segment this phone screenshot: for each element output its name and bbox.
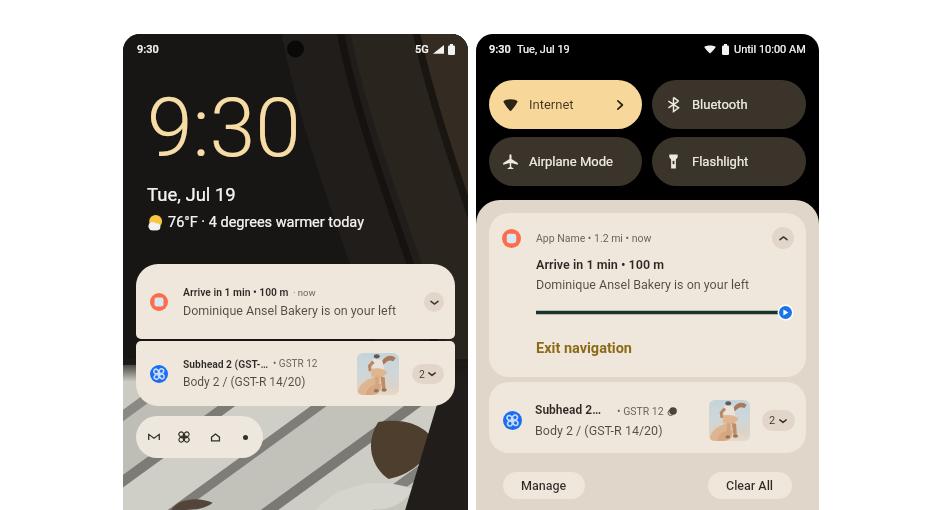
button[interactable]: Exit navigation (536, 340, 632, 357)
button[interactable]: Home (203, 425, 227, 449)
button[interactable]: Clear All (708, 472, 792, 499)
staticText: 2 (419, 368, 425, 380)
staticText: Internet (529, 97, 574, 112)
staticText: Dominique Ansel Bakery is on your left (183, 303, 397, 318)
staticText: Body 2 / (GST-R 14/20) (183, 375, 306, 389)
staticText: 9:30 (137, 43, 159, 56)
staticText: 9:30 (147, 80, 301, 176)
button[interactable]: 2 (762, 410, 795, 431)
staticText: Bluetooth (692, 97, 748, 112)
button[interactable]: Expand notification (424, 292, 444, 312)
staticText: Tue, Jul 19 (517, 43, 570, 56)
staticText: Tue, Jul 19 (147, 184, 236, 206)
button[interactable]: Airplane Mode (489, 137, 642, 186)
button[interactable]: Internet (489, 80, 642, 129)
button[interactable]: App Name • 1.2 mi • now (489, 213, 806, 377)
staticText: Manage (521, 478, 567, 493)
staticText: Until 10:00 AM (734, 43, 806, 56)
staticText: Airplane Mode (529, 154, 613, 169)
staticText: Subhead 2 (GST-… (183, 358, 269, 370)
staticText: 5G (415, 43, 429, 56)
staticText: 2 (769, 414, 776, 427)
button[interactable]: Subhead 2 (GST-… (136, 341, 455, 406)
staticText: Arrive in 1 min • 100 m (183, 286, 289, 298)
button[interactable]: 2 (412, 364, 444, 384)
staticText: • GSTR 12 (617, 405, 664, 417)
staticText: 9:30 (489, 43, 511, 56)
staticText: Dominique Ansel Bakery is on your left (536, 277, 750, 292)
button[interactable]: Gmail (142, 425, 166, 449)
staticText: 76°F · 4 degrees warmer today (168, 214, 365, 231)
button[interactable]: Flashlight (652, 137, 806, 186)
button[interactable]: More options (233, 425, 257, 449)
staticText: Subhead 2… (535, 403, 602, 417)
staticText: App Name • 1.2 mi • now (536, 232, 652, 244)
button[interactable]: Arrive in 1 min • 100 m (136, 264, 455, 339)
staticText: Arrive in 1 min • 100 m (536, 257, 664, 272)
button[interactable]: Manage (503, 472, 585, 499)
staticText: Body 2 / (GST-R 14/20) (535, 423, 663, 438)
button[interactable]: Bluetooth (652, 80, 806, 129)
staticText: Clear All (726, 478, 774, 493)
button[interactable]: Subhead 2… (489, 382, 806, 453)
staticText: • GSTR 12 (273, 358, 318, 370)
button[interactable]: Collapse notification (772, 227, 794, 249)
staticText: · now (293, 287, 316, 298)
button[interactable]: Photos (172, 425, 196, 449)
staticText: Flashlight (692, 154, 749, 169)
